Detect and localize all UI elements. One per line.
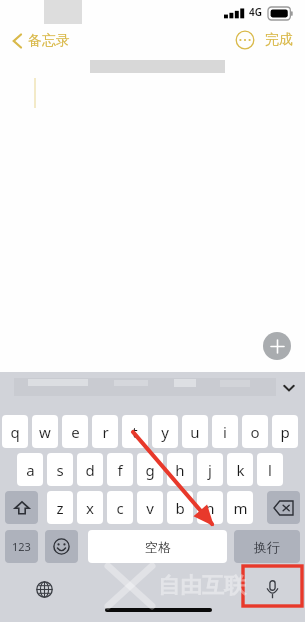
button[interactable]: m	[227, 491, 253, 524]
button[interactable]: 完成	[265, 31, 293, 49]
staticText: e	[71, 422, 80, 442]
button[interactable]: k	[227, 453, 253, 486]
staticText: y	[161, 422, 169, 442]
staticText: d	[85, 460, 95, 480]
button[interactable]: Shift	[5, 491, 38, 524]
staticText: l	[268, 460, 272, 480]
staticText: v	[146, 498, 154, 518]
staticText: 备忘录	[28, 32, 70, 50]
staticText: x	[86, 498, 94, 518]
button[interactable]: v	[137, 491, 163, 524]
button[interactable]: Collapse keyboard	[281, 380, 297, 396]
button[interactable]: Backspace	[267, 491, 300, 524]
staticText: b	[175, 498, 185, 518]
staticText: t	[132, 422, 138, 442]
button[interactable]: t	[122, 415, 148, 448]
button[interactable]: e	[62, 415, 88, 448]
button[interactable]: s	[47, 453, 73, 486]
staticText: c	[116, 498, 124, 518]
staticText: 4G	[249, 5, 262, 19]
button[interactable]: Change keyboard language	[30, 575, 58, 603]
staticText: p	[280, 422, 290, 442]
staticText: h	[175, 460, 185, 480]
button[interactable]: a	[17, 453, 43, 486]
staticText: a	[26, 460, 35, 480]
button[interactable]: o	[242, 415, 268, 448]
staticText: s	[56, 460, 64, 480]
button[interactable]: 备忘录	[12, 32, 70, 50]
button[interactable]: j	[197, 453, 223, 486]
button[interactable]: i	[212, 415, 238, 448]
button[interactable]: u	[182, 415, 208, 448]
staticText: m	[233, 498, 248, 518]
button[interactable]: 空格	[88, 530, 227, 563]
button[interactable]: d	[77, 453, 103, 486]
button[interactable]: Voice input	[258, 575, 286, 603]
button[interactable]: 123	[5, 530, 38, 563]
staticText: 空格	[145, 539, 171, 555]
button[interactable]: 换行	[234, 530, 300, 563]
button[interactable]: y	[152, 415, 178, 448]
staticText: u	[190, 422, 200, 442]
button[interactable]: Add	[263, 332, 291, 360]
button[interactable]: More options	[235, 30, 255, 50]
staticText: o	[250, 422, 260, 442]
staticText: j	[208, 460, 212, 480]
button[interactable]: x	[77, 491, 103, 524]
staticText: g	[145, 460, 155, 480]
staticText: r	[102, 422, 109, 442]
staticText: z	[56, 498, 64, 518]
button[interactable]: n	[197, 491, 223, 524]
staticText: 123	[12, 539, 31, 554]
button[interactable]: p	[272, 415, 298, 448]
button[interactable]: f	[107, 453, 133, 486]
button[interactable]: h	[167, 453, 193, 486]
staticText: i	[223, 422, 227, 442]
button[interactable]: r	[92, 415, 118, 448]
staticText: q	[10, 422, 20, 442]
button[interactable]: q	[2, 415, 28, 448]
staticText: 完成	[265, 31, 293, 49]
staticText: 自由互联	[158, 572, 246, 600]
staticText: f	[117, 460, 123, 480]
button[interactable]: g	[137, 453, 163, 486]
button[interactable]: c	[107, 491, 133, 524]
staticText: k	[236, 460, 245, 480]
button[interactable]: b	[167, 491, 193, 524]
button[interactable]: w	[32, 415, 58, 448]
staticText: n	[205, 498, 215, 518]
staticText: w	[39, 422, 51, 442]
button[interactable]: l	[257, 453, 283, 486]
button[interactable]: Emoji	[45, 530, 78, 563]
staticText: 换行	[254, 539, 280, 555]
button[interactable]: z	[47, 491, 73, 524]
